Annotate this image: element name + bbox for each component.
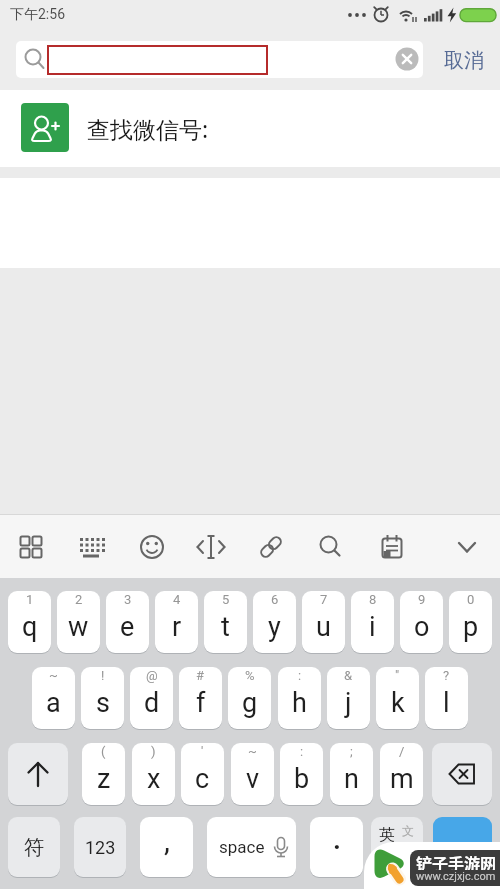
staticText: & [344,668,353,683]
staticText: 1 [26,592,34,607]
button[interactable] [432,743,492,805]
staticText: d [144,687,160,719]
staticText: 9 [418,592,426,607]
staticText: e [120,611,135,643]
staticText: : [298,668,302,683]
staticText: i [369,611,376,643]
button[interactable] [433,817,492,877]
button[interactable]: 1 [8,591,51,653]
button[interactable] [445,525,489,569]
button[interactable]: 3 [106,591,149,653]
button[interactable]: , [140,817,193,877]
staticText: b [294,763,310,795]
staticText: # [196,668,205,683]
button[interactable]: ~ [32,667,75,729]
staticText: a [46,687,61,719]
button[interactable]: : [280,743,323,805]
staticText: o [414,611,430,643]
button[interactable] [370,525,414,569]
button[interactable]: · [310,817,363,877]
button[interactable] [130,525,174,569]
staticText: 7 [320,592,328,607]
staticText: ; [350,744,353,759]
staticText: 英 [379,825,395,845]
button[interactable]: 6 [253,591,296,653]
button[interactable]: 符 [8,817,60,877]
button[interactable]: @ [130,667,173,729]
staticText: 取消 [444,48,484,73]
button[interactable]: ; [330,743,373,805]
staticText: n [344,763,359,795]
staticText: space [219,837,265,857]
staticText: 4 [173,592,181,607]
button[interactable]: " [376,667,419,729]
staticText: ( [101,744,106,759]
staticText: 3 [124,592,132,607]
staticText: r [172,611,182,643]
staticText: ~ [248,744,257,759]
button[interactable]: 123 [74,817,126,877]
button[interactable]: 4 [155,591,198,653]
button[interactable]: ~ [231,743,274,805]
button[interactable] [189,525,233,569]
button[interactable]: # [179,667,222,729]
staticText: 2 [75,592,83,607]
staticText: 铲子手游网 [416,851,497,870]
button[interactable]: / [380,743,423,805]
staticText: 123 [85,837,116,858]
staticText: www.czjxjc.com [416,870,496,883]
staticText: ' [201,744,204,759]
staticText: s [96,687,110,719]
button[interactable]: 9 [400,591,443,653]
button[interactable]: ' [181,743,224,805]
staticText: y [268,611,281,643]
button[interactable] [249,525,293,569]
staticText: l [443,687,450,719]
staticText: % [245,668,255,683]
staticText: ? [443,668,450,683]
button[interactable] [0,90,500,167]
button[interactable]: : [278,667,321,729]
button[interactable]: 5 [204,591,247,653]
staticText: ! [101,668,105,683]
staticText: c [195,763,210,795]
button[interactable]: 7 [302,591,345,653]
button[interactable]: ! [81,667,124,729]
staticText: z [97,763,111,795]
staticText: t [221,611,230,643]
staticText: u [316,611,331,643]
staticText: 符 [24,835,44,860]
staticText: · [333,832,341,862]
staticText: ~ [49,668,58,683]
button[interactable]: ( [82,743,125,805]
staticText: v [246,763,260,795]
staticText: w [68,611,89,643]
button[interactable] [8,743,68,805]
button[interactable]: 0 [449,591,492,653]
staticText: m [390,763,414,795]
staticText: ) [151,744,156,759]
button[interactable] [16,41,423,78]
button[interactable]: 取消 [434,46,494,74]
staticText: h [292,687,307,719]
staticText: @ [146,668,158,683]
button[interactable]: ? [425,667,468,729]
staticText: 0 [467,592,475,607]
button[interactable]: 8 [351,591,394,653]
staticText: , [164,823,170,858]
button[interactable]: 2 [57,591,100,653]
staticText: 文 [402,823,414,838]
staticText: 下午2:56 [10,6,65,24]
button[interactable] [69,525,113,569]
staticText: q [22,611,38,643]
button[interactable]: & [327,667,370,729]
button[interactable]: ) [132,743,175,805]
staticText: : [300,744,304,759]
staticText: 6 [271,592,279,607]
button[interactable]: 英 [371,817,423,877]
button[interactable] [9,525,53,569]
button[interactable] [308,525,352,569]
staticText: j [345,687,352,719]
button[interactable]: % [228,667,271,729]
button[interactable]: space [207,817,296,877]
